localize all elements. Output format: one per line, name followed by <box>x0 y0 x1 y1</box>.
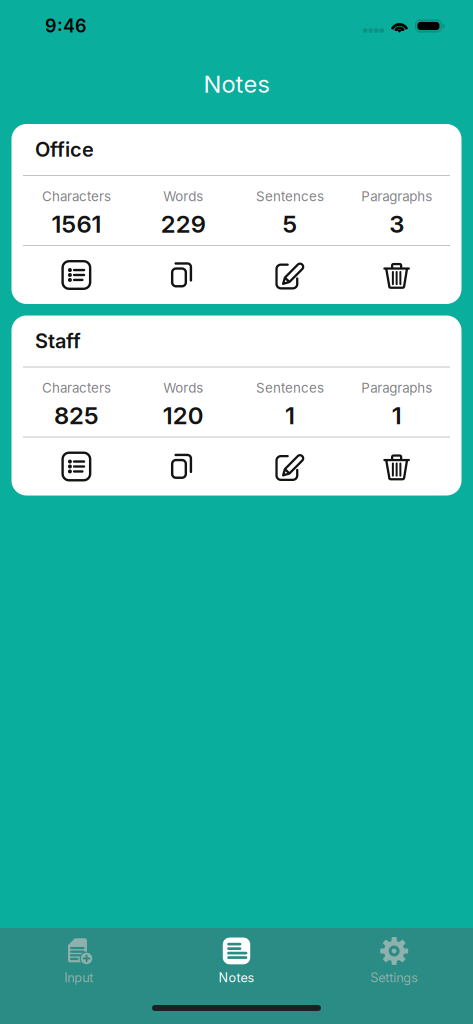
staticText: 3 <box>389 209 404 238</box>
staticText: 825 <box>54 401 99 430</box>
staticText: Paragraphs <box>361 380 432 396</box>
staticText: 229 <box>161 209 206 238</box>
staticText: Characters <box>42 380 111 396</box>
staticText: 5 <box>282 209 297 238</box>
button[interactable]: Edit <box>236 441 343 491</box>
button[interactable]: Settings <box>315 928 473 985</box>
button[interactable]: Details <box>23 441 130 491</box>
staticText: Input <box>64 970 93 985</box>
staticText: 9:46 <box>45 15 87 37</box>
staticText: 1 <box>392 401 402 430</box>
staticText: 120 <box>163 401 204 430</box>
button[interactable]: Details <box>23 250 130 300</box>
button[interactable]: Input <box>0 928 158 985</box>
staticText: Paragraphs <box>361 188 432 204</box>
staticText: Words <box>163 188 203 204</box>
staticText: Staff <box>35 329 81 353</box>
staticText: Office <box>35 137 94 162</box>
staticText: Notes <box>203 69 269 98</box>
staticText: 1 <box>285 401 295 430</box>
staticText: Words <box>163 380 203 396</box>
staticText: 1561 <box>51 209 101 238</box>
button[interactable]: Delete <box>343 441 450 491</box>
staticText: Sentences <box>256 188 324 204</box>
button[interactable]: Copy <box>130 250 237 300</box>
button[interactable]: Edit <box>236 250 343 300</box>
staticText: Characters <box>42 188 111 204</box>
button[interactable]: Delete <box>343 250 450 300</box>
staticText: Notes <box>218 970 254 985</box>
staticText: Settings <box>370 970 418 985</box>
button[interactable]: Notes <box>158 928 315 985</box>
button[interactable]: Copy <box>130 441 237 491</box>
staticText: Sentences <box>256 380 324 396</box>
